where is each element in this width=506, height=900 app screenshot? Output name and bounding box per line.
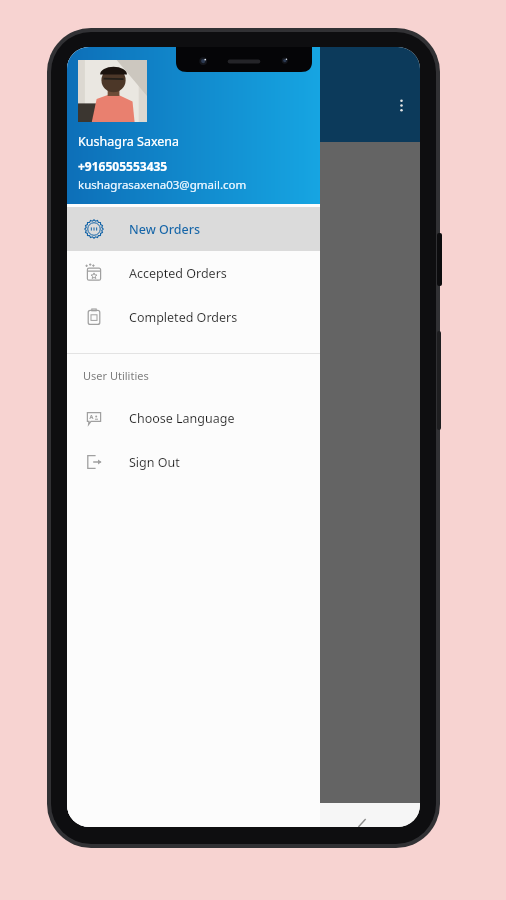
button[interactable]: Sign Out	[67, 440, 320, 484]
button[interactable]: Choose Language	[67, 396, 320, 440]
button[interactable]: New Orders	[67, 207, 320, 251]
button[interactable]: Accepted Orders	[67, 251, 320, 295]
staticText: kushagrasaxena03@gmail.com	[78, 177, 247, 193]
staticText: Sign Out	[129, 454, 180, 471]
staticText: Choose Language	[129, 410, 235, 427]
button[interactable]: Recents	[67, 803, 184, 827]
staticText: Completed Orders	[129, 309, 238, 326]
staticText: +916505553435	[78, 158, 168, 174]
staticText: Kushagra Saxena	[78, 133, 180, 150]
staticText: Accepted Orders	[129, 265, 227, 282]
staticText: User Utilities	[83, 368, 149, 383]
staticText: New Orders	[129, 221, 201, 238]
button[interactable]: Kushagra Saxena	[67, 47, 320, 204]
button[interactable]: Completed Orders	[67, 295, 320, 339]
button[interactable]: Back	[302, 803, 420, 827]
button[interactable]: More options	[382, 86, 420, 124]
